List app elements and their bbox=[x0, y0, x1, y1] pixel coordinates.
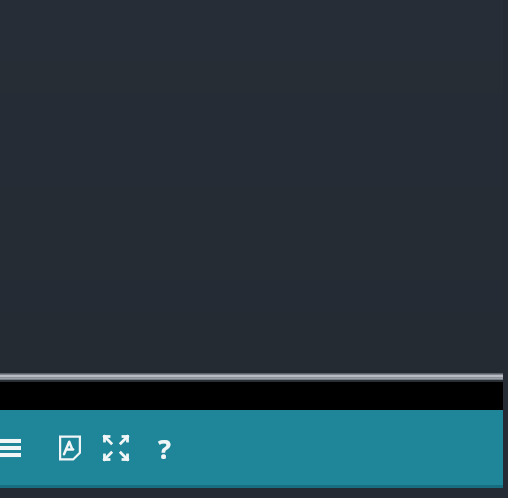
staticText: ? bbox=[158, 430, 171, 467]
button[interactable]: Help bbox=[142, 426, 186, 470]
button[interactable]: Export PDF bbox=[48, 426, 92, 470]
button[interactable]: Menu bbox=[0, 426, 30, 470]
button[interactable]: Fullscreen bbox=[94, 426, 138, 470]
